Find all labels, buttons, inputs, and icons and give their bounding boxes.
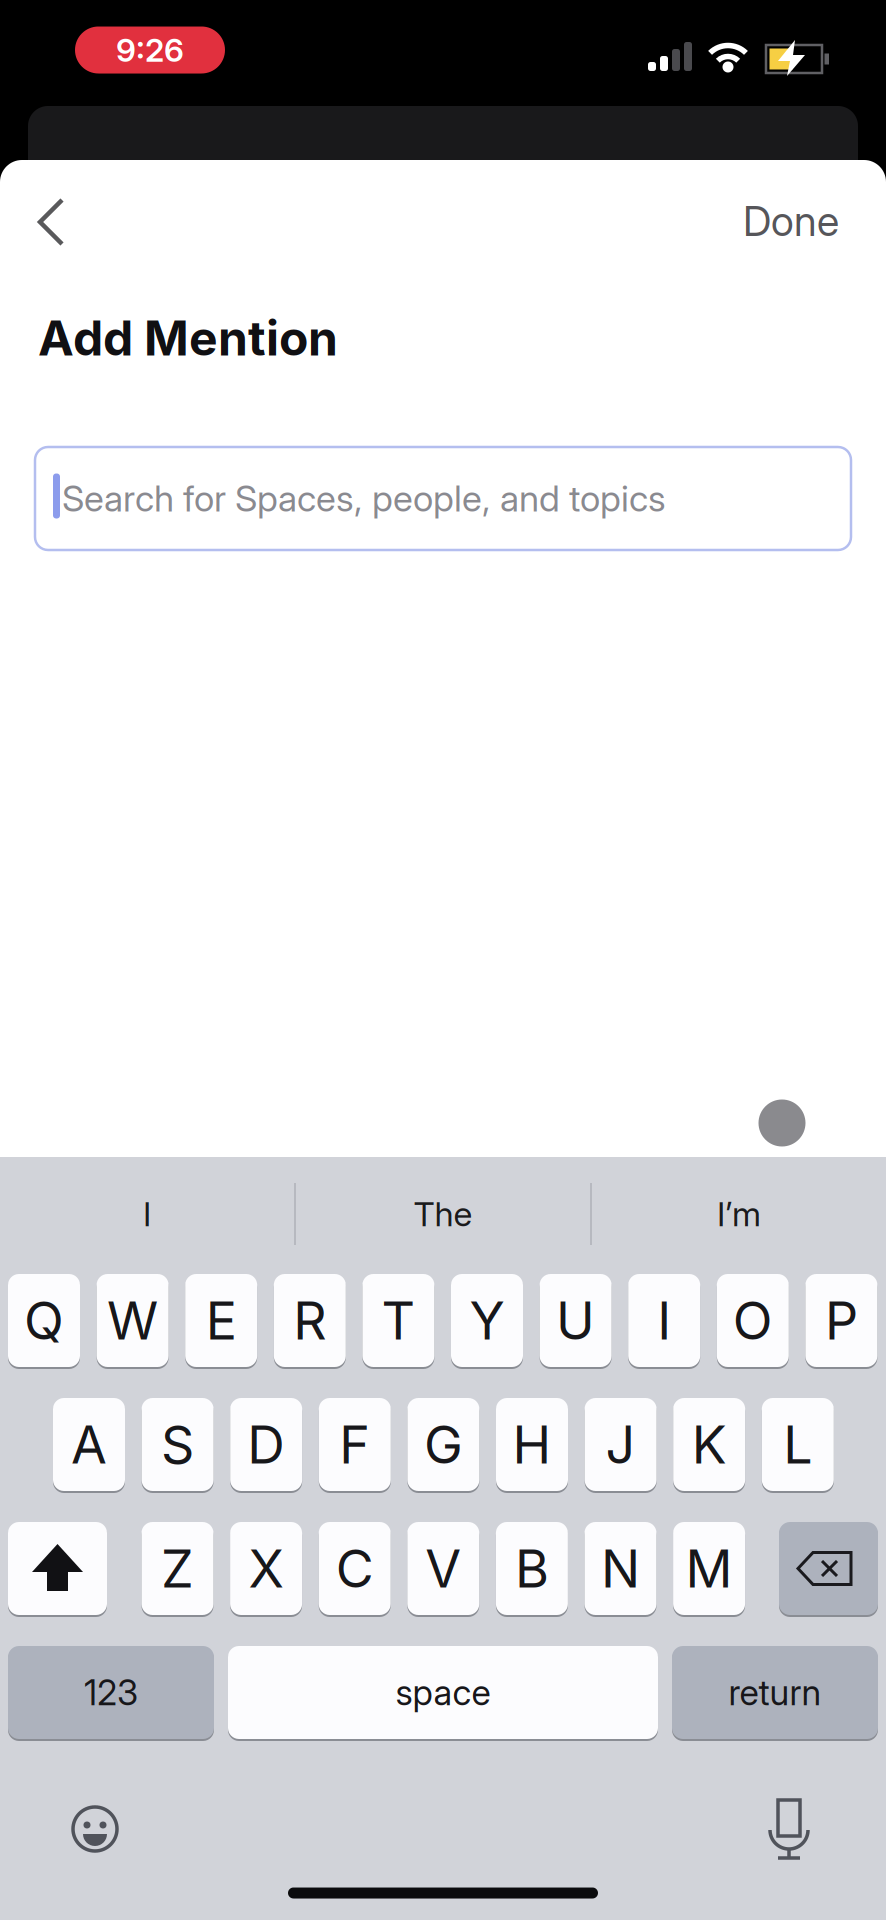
staticText: I xyxy=(657,1289,671,1352)
staticText: N xyxy=(601,1537,640,1600)
button[interactable]: A xyxy=(53,1397,125,1492)
staticText: 9:26 xyxy=(116,31,184,69)
button[interactable] xyxy=(755,1794,823,1864)
button[interactable]: I xyxy=(628,1273,700,1368)
staticText: I xyxy=(143,1193,151,1234)
staticText: Q xyxy=(24,1289,64,1352)
staticText: 123 xyxy=(84,1671,138,1714)
staticText: M xyxy=(686,1537,733,1600)
staticText: Z xyxy=(161,1537,194,1600)
staticText: B xyxy=(515,1537,549,1600)
staticText: Y xyxy=(469,1289,504,1352)
button[interactable]: P xyxy=(805,1273,877,1368)
button[interactable] xyxy=(8,1521,107,1616)
staticText: R xyxy=(293,1289,326,1352)
staticText: K xyxy=(692,1413,727,1476)
button[interactable]: G xyxy=(407,1397,479,1492)
button[interactable]: B xyxy=(496,1521,568,1616)
staticText: E xyxy=(206,1289,237,1352)
staticText: X xyxy=(249,1537,284,1600)
staticText: G xyxy=(424,1413,463,1476)
button[interactable] xyxy=(61,1795,129,1863)
button[interactable]: W xyxy=(97,1273,169,1368)
button[interactable]: M xyxy=(673,1521,745,1616)
button[interactable]: Done xyxy=(743,196,839,246)
staticText: J xyxy=(606,1413,636,1476)
staticText: O xyxy=(733,1289,773,1352)
staticText: return xyxy=(728,1671,821,1714)
staticText: Search for Spaces, people, and topics xyxy=(62,477,666,520)
staticText: S xyxy=(161,1413,194,1476)
button[interactable]: L xyxy=(762,1397,834,1492)
button[interactable]: I’m xyxy=(604,1172,874,1256)
staticText: A xyxy=(71,1413,107,1476)
staticText: T xyxy=(381,1289,415,1352)
button[interactable]: 123 xyxy=(8,1645,214,1740)
staticText: F xyxy=(339,1413,370,1476)
button[interactable]: U xyxy=(540,1273,612,1368)
button[interactable]: T xyxy=(362,1273,434,1368)
button[interactable]: V xyxy=(407,1521,479,1616)
button[interactable]: X xyxy=(230,1521,302,1616)
button[interactable]: Search for Spaces, people, and topics xyxy=(35,447,851,550)
button[interactable]: O xyxy=(717,1273,789,1368)
button[interactable]: Q xyxy=(8,1273,80,1368)
button[interactable]: The xyxy=(308,1172,578,1256)
staticText: space xyxy=(395,1671,490,1714)
staticText: D xyxy=(247,1413,285,1476)
staticText: Add Mention xyxy=(38,309,338,367)
staticText: Done xyxy=(743,196,839,246)
button[interactable]: R xyxy=(274,1273,346,1368)
button[interactable] xyxy=(779,1521,878,1616)
staticText: C xyxy=(336,1537,374,1600)
staticText: The xyxy=(413,1193,472,1234)
staticText: L xyxy=(783,1413,812,1476)
button[interactable]: space xyxy=(228,1645,658,1740)
button[interactable]: N xyxy=(584,1521,656,1616)
button[interactable]: S xyxy=(142,1397,214,1492)
staticText: H xyxy=(512,1413,551,1476)
staticText: U xyxy=(556,1289,595,1352)
button[interactable]: F xyxy=(319,1397,391,1492)
button[interactable] xyxy=(24,194,88,250)
button[interactable]: return xyxy=(672,1645,878,1740)
staticText: P xyxy=(825,1289,858,1352)
button[interactable]: D xyxy=(230,1397,302,1492)
button[interactable]: H xyxy=(496,1397,568,1492)
staticText: W xyxy=(107,1289,158,1352)
button[interactable]: C xyxy=(319,1521,391,1616)
button[interactable]: Z xyxy=(141,1521,213,1616)
button[interactable]: E xyxy=(185,1273,257,1368)
staticText: I’m xyxy=(717,1193,761,1234)
button[interactable]: I xyxy=(12,1172,282,1256)
button[interactable]: 9:26 xyxy=(75,26,225,73)
button[interactable]: Y xyxy=(451,1273,523,1368)
button[interactable]: K xyxy=(673,1397,745,1492)
button[interactable]: J xyxy=(585,1397,657,1492)
staticText: V xyxy=(425,1537,461,1600)
